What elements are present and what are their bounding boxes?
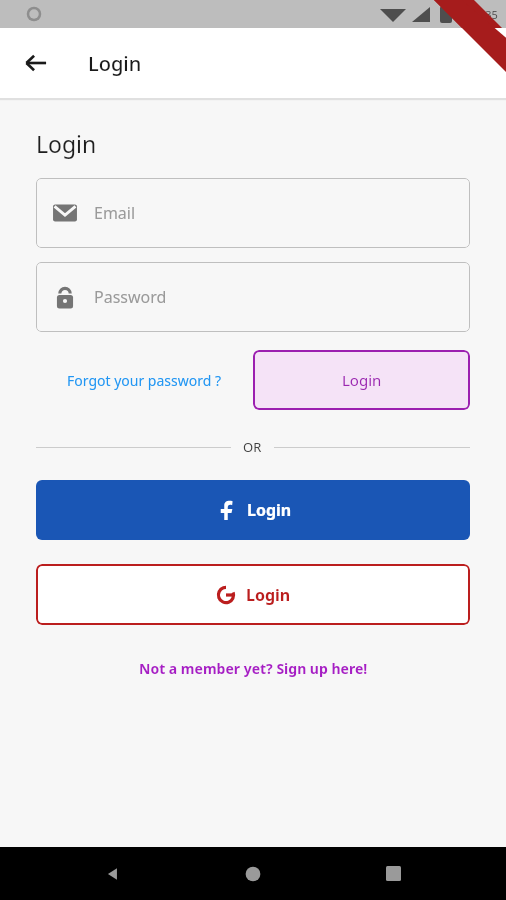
- staticText: Login: [88, 50, 142, 77]
- staticText: Login: [342, 370, 382, 390]
- staticText: Login: [246, 584, 291, 606]
- button[interactable]: Login: [36, 480, 470, 540]
- staticText: Email: [94, 202, 136, 224]
- staticText: Login: [36, 128, 97, 159]
- button[interactable]: Login: [253, 350, 470, 410]
- button[interactable]: Back: [86, 847, 140, 900]
- button[interactable]: Login: [36, 564, 470, 625]
- button[interactable]: Back: [12, 39, 60, 87]
- button[interactable]: Home: [226, 847, 280, 900]
- button[interactable]: Forgot your password ?: [36, 361, 253, 400]
- staticText: Login: [247, 499, 292, 521]
- staticText: Password: [94, 286, 167, 308]
- button[interactable]: Password: [36, 262, 470, 332]
- button[interactable]: Not a member yet? Sign up here!: [127, 653, 380, 684]
- staticText: Forgot your password ?: [67, 371, 222, 390]
- button[interactable]: Email: [36, 178, 470, 248]
- staticText: OR: [243, 438, 262, 456]
- button[interactable]: Recent apps: [366, 847, 420, 900]
- staticText: 9:35: [476, 7, 498, 22]
